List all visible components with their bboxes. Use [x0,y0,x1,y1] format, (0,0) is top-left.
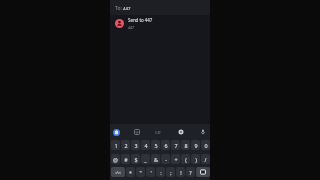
staticText: ' [150,169,152,176]
button[interactable]: Send to 447 [110,15,210,32]
staticText: =\< [115,170,121,175]
button[interactable]: 9 [191,140,200,150]
button[interactable]: " [136,167,145,177]
staticText: # [124,156,128,163]
staticText: 8 [184,142,188,149]
staticText: ; [170,169,172,176]
staticText: + [174,156,178,163]
staticText: : [160,169,162,176]
button[interactable]: + [171,154,180,164]
button[interactable]: 8 [181,140,190,150]
button[interactable]: 3 [131,140,140,150]
button[interactable]: ) [191,154,200,164]
staticText: $ [134,156,138,163]
button[interactable]: ' [146,167,155,177]
button[interactable]: 4 [141,140,150,150]
staticText: 5 [154,142,158,149]
staticText: GIF [155,130,161,135]
button[interactable]: * [126,167,135,177]
button[interactable]: 1 [111,140,120,150]
staticText: 9 [194,142,198,149]
staticText: 6 [164,142,168,149]
staticText: _ [144,156,147,163]
button[interactable]: Stickers [133,128,141,136]
button[interactable]: / [201,154,210,164]
staticText: To: [115,5,122,12]
button[interactable]: @ [111,154,120,164]
staticText: ! [180,169,182,176]
button[interactable]: Voice input [199,128,207,136]
button[interactable]: Backspace [196,167,210,177]
button[interactable]: Clipboard [113,129,120,136]
staticText: * [129,169,132,176]
button[interactable]: 7 [171,140,180,150]
staticText: - [165,156,167,163]
staticText: @ [113,156,118,163]
staticText: ? [189,169,192,176]
staticText: 0 [204,142,208,149]
button[interactable]: - [161,154,170,164]
button[interactable]: & [151,154,160,164]
staticText: ) [195,156,197,163]
button[interactable]: : [156,167,165,177]
button[interactable]: _ [141,154,150,164]
staticText: & [154,156,158,163]
button[interactable]: 6 [161,140,170,150]
staticText: 447 [128,25,135,30]
button[interactable]: Symbols [111,167,125,177]
button[interactable]: $ [131,154,140,164]
staticText: Send to 447 [128,17,153,23]
staticText: 4 [144,142,148,149]
staticText: ( [185,156,187,163]
button[interactable]: ? [186,167,195,177]
button[interactable]: # [121,154,130,164]
button[interactable]: Settings [177,128,185,136]
button[interactable]: 5 [151,140,160,150]
button[interactable]: ( [181,154,190,164]
staticText: 7 [174,142,178,149]
staticText: 447 [123,5,131,11]
button[interactable]: GIF [152,130,164,135]
button[interactable]: ; [166,167,175,177]
staticText: / [204,156,207,163]
staticText: " [139,169,142,176]
button[interactable]: 2 [121,140,130,150]
button[interactable]: 0 [201,140,210,150]
staticText: 2 [124,142,128,149]
staticText: 1 [114,142,118,149]
staticText: 3 [134,142,138,149]
button[interactable]: ! [176,167,185,177]
